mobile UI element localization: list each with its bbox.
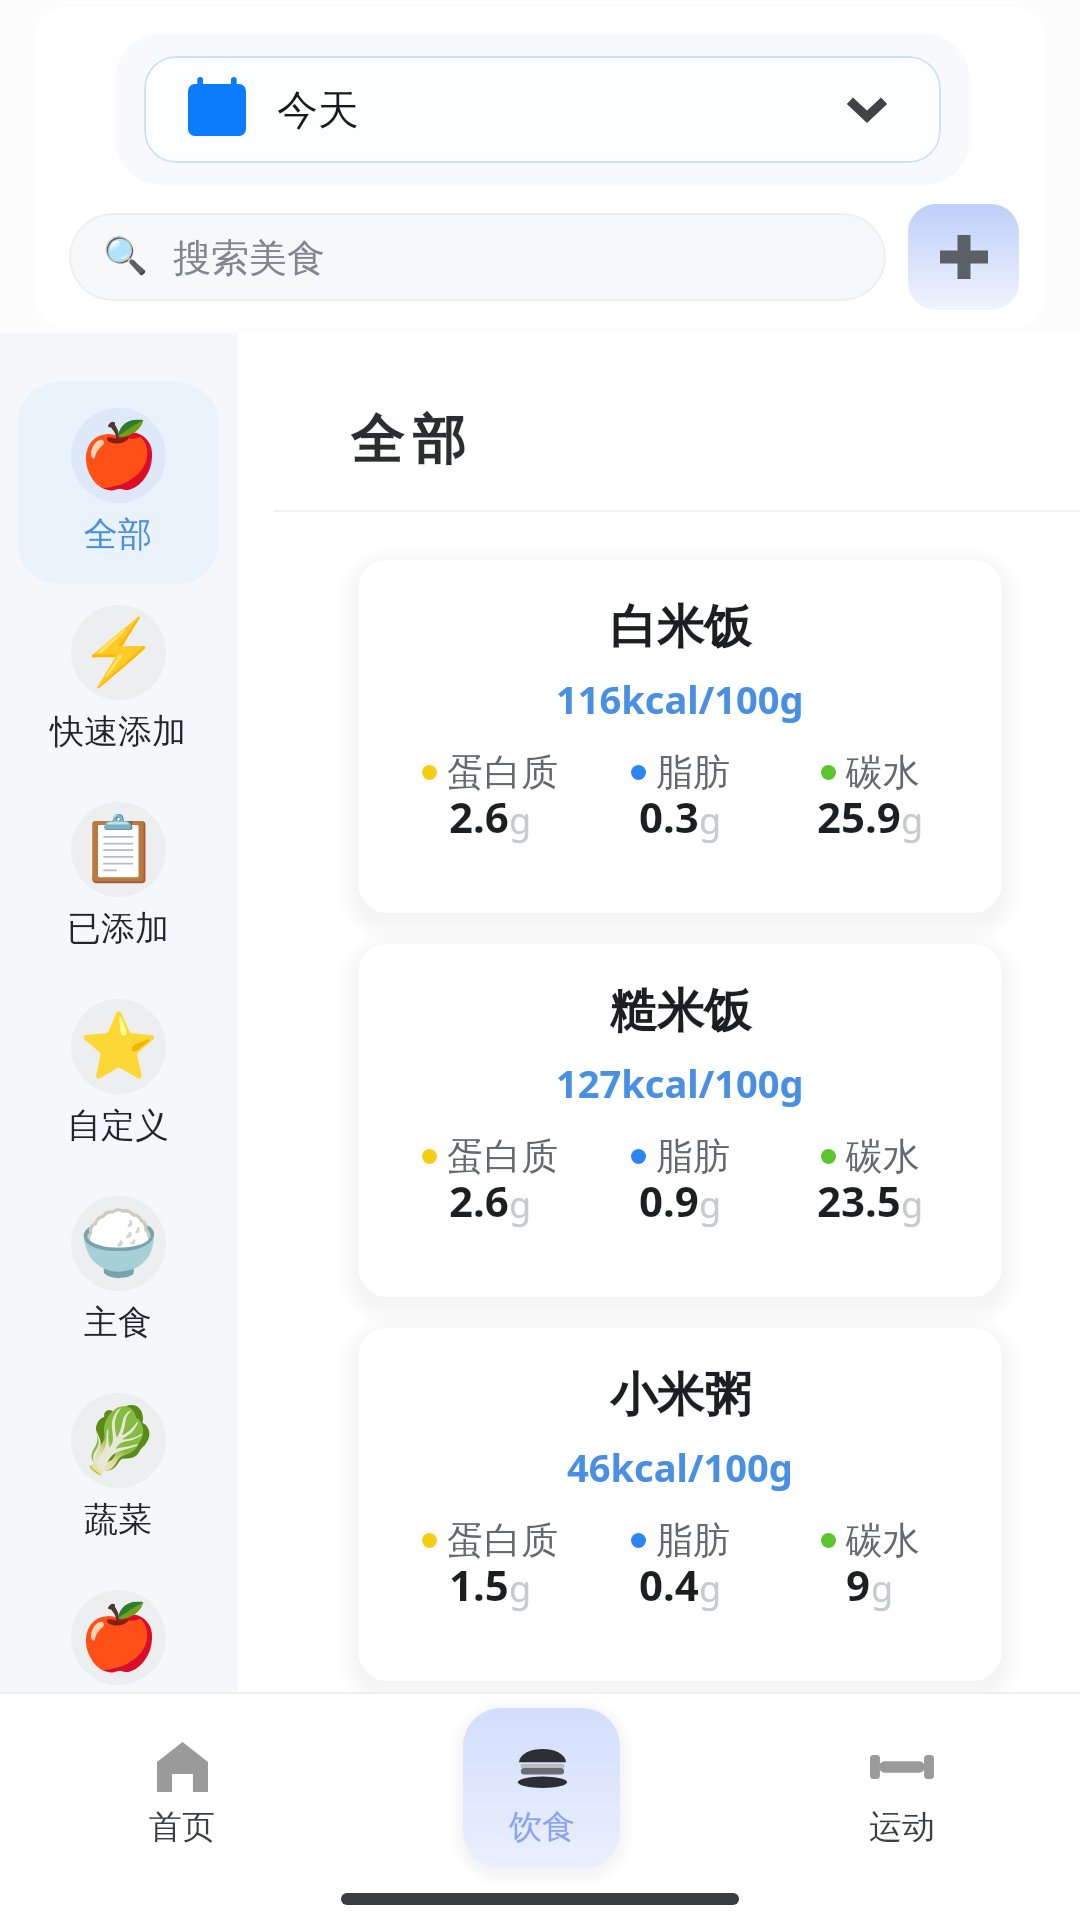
staticText: 🍎 xyxy=(79,1600,159,1675)
staticText: 饮食 xyxy=(509,1806,575,1848)
staticText: 23.5 xyxy=(817,1172,901,1229)
button[interactable]: ⭐️ xyxy=(17,955,219,1157)
button[interactable]: 📋 xyxy=(17,758,219,960)
staticText: 脂肪 xyxy=(656,1133,730,1180)
staticText: 碳水 xyxy=(846,749,920,796)
staticText: 127kcal/100g xyxy=(556,1057,804,1109)
button[interactable]: 首页 xyxy=(108,1714,256,1866)
staticText: 🍚 xyxy=(79,1206,159,1281)
staticText: 9 xyxy=(846,1556,871,1613)
staticText: 蛋白质 xyxy=(447,749,558,796)
staticText: 116kcal/100g xyxy=(556,673,804,725)
staticText: g xyxy=(509,1564,532,1613)
staticText: 0.3 xyxy=(639,788,699,845)
staticText: 🔍 xyxy=(103,235,148,277)
staticText: 碳水 xyxy=(846,1133,920,1180)
staticText: 脂肪 xyxy=(656,1517,730,1564)
button[interactable]: 🥬 xyxy=(17,1349,219,1551)
staticText: 糙米饭 xyxy=(610,982,751,1041)
staticText: 2.6 xyxy=(449,788,509,845)
staticText: g xyxy=(871,1564,894,1613)
staticText: 搜索美食 xyxy=(173,234,325,282)
staticText: g xyxy=(699,1564,722,1613)
staticText: 0.9 xyxy=(639,1172,699,1229)
staticText: 白米饭 xyxy=(610,598,751,657)
staticText: 0.4 xyxy=(639,1556,699,1613)
staticText: 📋 xyxy=(79,812,159,887)
staticText: 已添加 xyxy=(67,907,169,950)
button[interactable]: 小米粥 xyxy=(358,1328,1002,1681)
staticText: 蛋白质 xyxy=(447,1133,558,1180)
staticText: 全部 xyxy=(346,407,470,474)
button[interactable]: 🍚 xyxy=(17,1152,219,1354)
button[interactable]: 🍎 xyxy=(17,364,219,566)
staticText: 25.9 xyxy=(817,788,901,845)
staticText: 首页 xyxy=(149,1806,215,1848)
staticText: 自定义 xyxy=(67,1104,169,1147)
button[interactable]: ⚡️ xyxy=(17,561,219,763)
button[interactable]: 白米饭 xyxy=(358,560,1002,913)
staticText: 运动 xyxy=(869,1806,935,1848)
staticText: 碳水 xyxy=(846,1517,920,1564)
button[interactable]: 糙米饭 xyxy=(358,944,1002,1297)
staticText: g xyxy=(699,796,722,845)
button[interactable]: 添加美食 xyxy=(908,204,1019,310)
staticText: 1.5 xyxy=(449,1556,509,1613)
staticText: 蛋白质 xyxy=(447,1517,558,1564)
staticText: 🥬 xyxy=(79,1403,159,1478)
staticText: ⭐️ xyxy=(79,1009,159,1084)
staticText: g xyxy=(699,1180,722,1229)
staticText: 小米粥 xyxy=(610,1366,751,1425)
staticText: ⚡️ xyxy=(79,615,159,690)
staticText: 主食 xyxy=(84,1301,152,1344)
button[interactable]: 饮食 xyxy=(468,1714,616,1866)
staticText: 🍎 xyxy=(79,418,159,493)
staticText: 46kcal/100g xyxy=(567,1441,793,1493)
staticText: 全部 xyxy=(84,513,152,556)
staticText: g xyxy=(901,1180,924,1229)
staticText: g xyxy=(509,1180,532,1229)
staticText: 蔬菜 xyxy=(84,1498,152,1541)
button[interactable]: 今天 xyxy=(144,56,941,163)
staticText: g xyxy=(509,796,532,845)
button[interactable]: 🔍 xyxy=(69,213,886,301)
staticText: 今天 xyxy=(277,85,359,137)
staticText: 2.6 xyxy=(449,1172,509,1229)
staticText: g xyxy=(901,796,924,845)
button[interactable]: 运动 xyxy=(828,1714,976,1866)
staticText: 脂肪 xyxy=(656,749,730,796)
staticText: 快速添加 xyxy=(50,710,186,753)
button[interactable]: 🍎 xyxy=(17,1546,219,1748)
